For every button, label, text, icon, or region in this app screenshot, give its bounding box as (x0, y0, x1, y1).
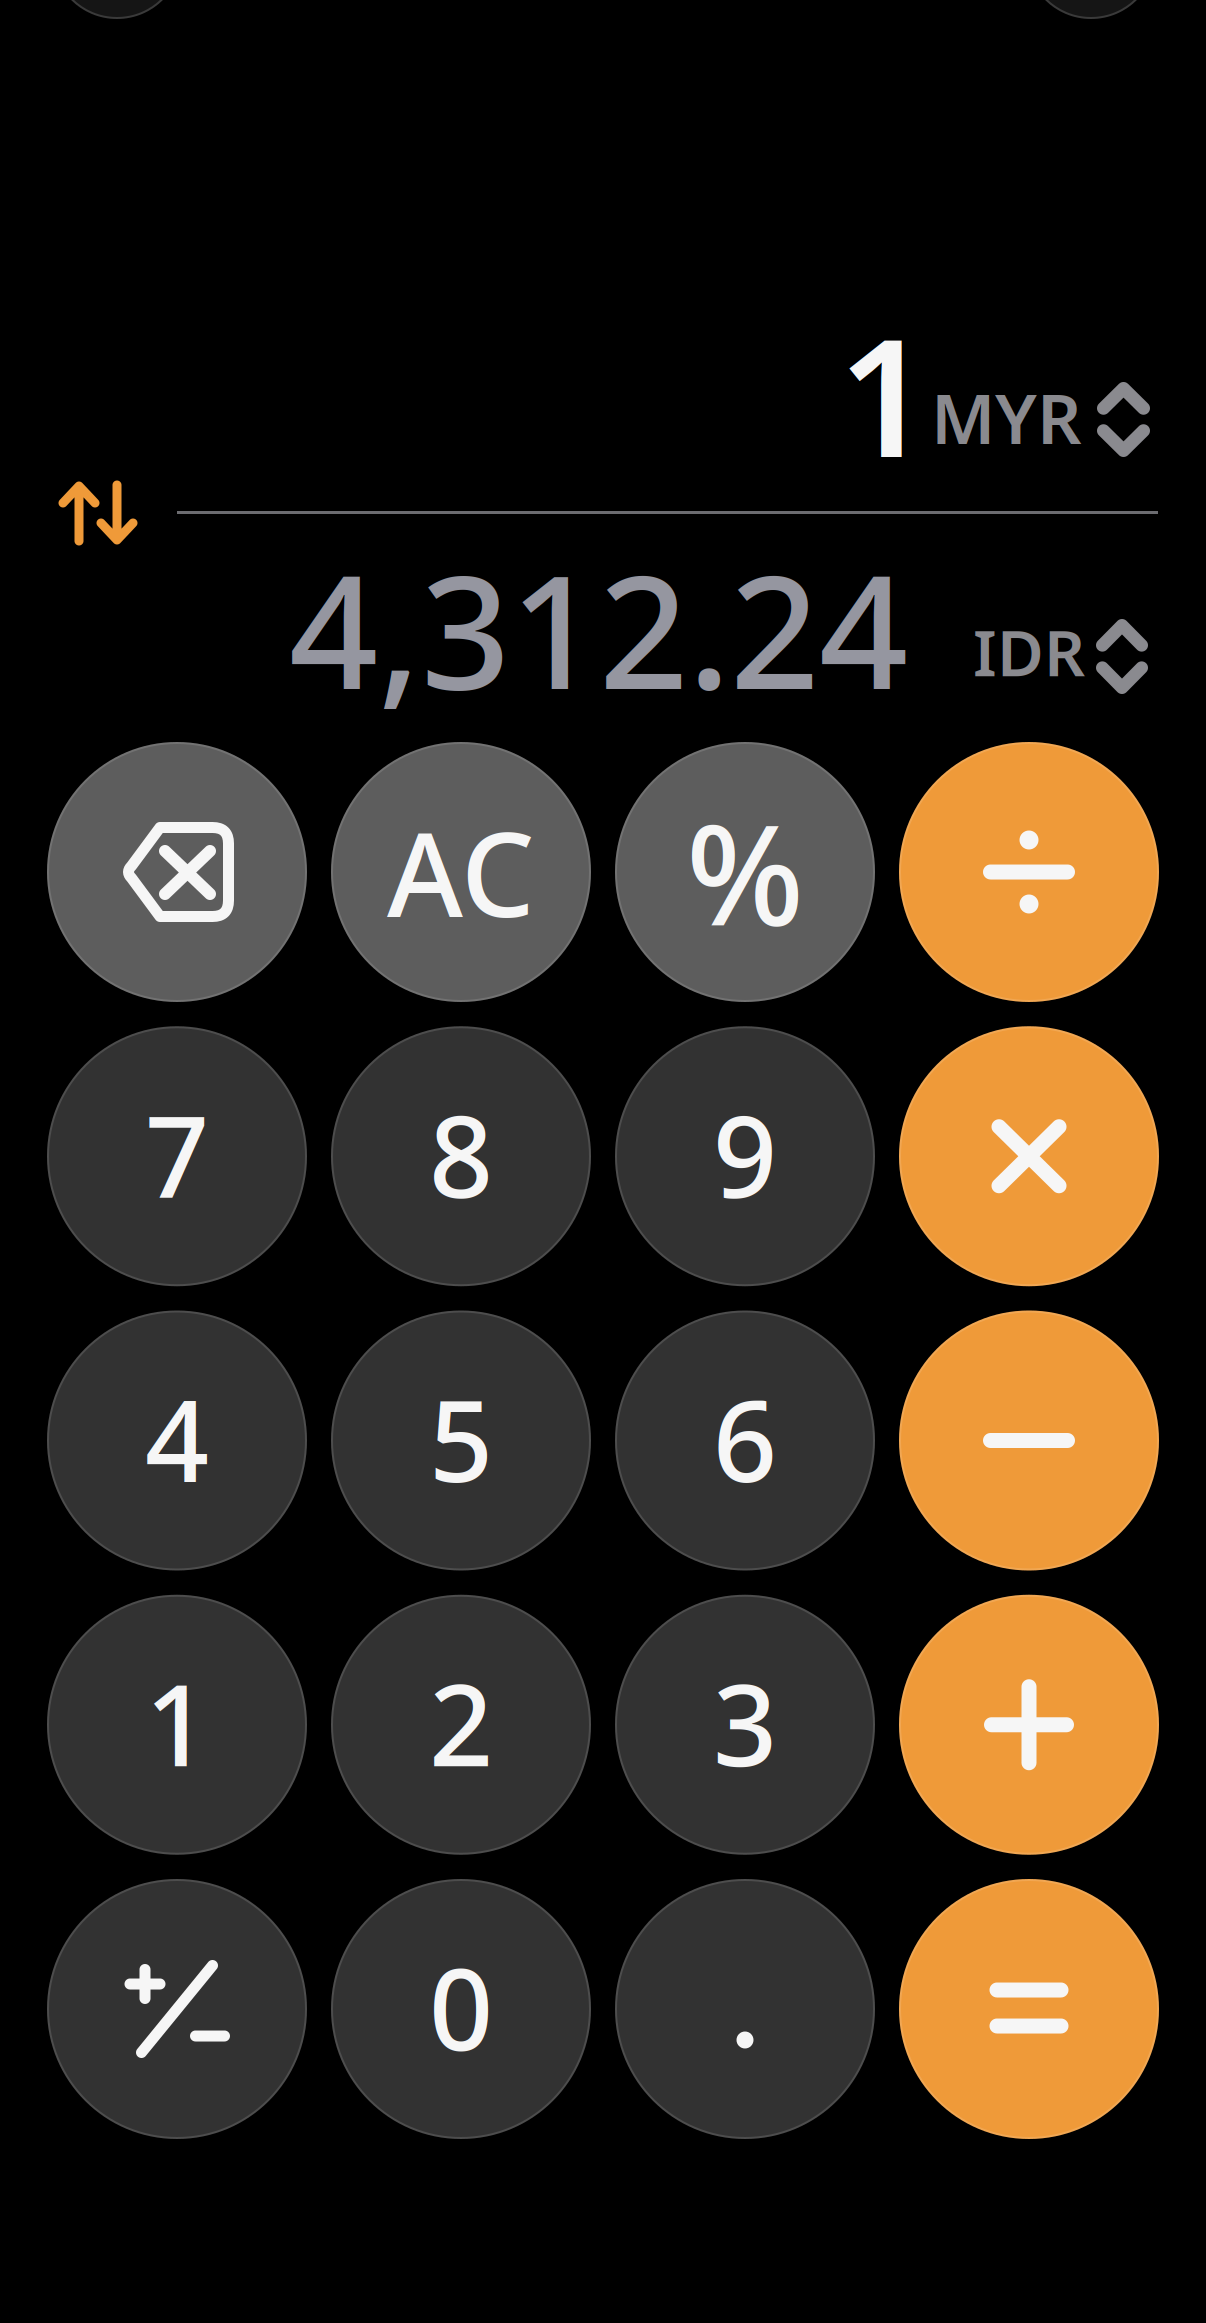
button[interactable]: Toggle sign (47, 1879, 307, 2139)
button[interactable]: Decimal point (615, 1879, 875, 2139)
button[interactable]: Swap currencies (32, 454, 164, 572)
button[interactable]: 8 (331, 1026, 591, 1286)
button[interactable]: Plus (899, 1595, 1159, 1855)
staticText: AC (387, 795, 535, 949)
button[interactable]: 0 (331, 1879, 591, 2139)
staticText: % (686, 780, 804, 964)
button[interactable]: All clear (331, 742, 591, 1002)
button[interactable]: 7 (47, 1026, 307, 1286)
staticText: 1 (145, 1648, 209, 1797)
button[interactable]: Minus (899, 1310, 1159, 1570)
button[interactable]: 6 (615, 1310, 875, 1570)
button[interactable]: 3 (615, 1595, 875, 1855)
button[interactable]: Multiply (899, 1026, 1159, 1286)
staticText: 9 (713, 1080, 777, 1229)
staticText: MYR (931, 371, 1082, 463)
staticText: 3 (713, 1648, 777, 1797)
staticText: 8 (429, 1080, 493, 1229)
button[interactable]: Equals (899, 1879, 1159, 2139)
button[interactable]: 1 (47, 1595, 307, 1855)
button[interactable]: 2 (331, 1595, 591, 1855)
button[interactable]: Divide (899, 742, 1159, 1002)
staticText: 2 (429, 1648, 493, 1797)
button[interactable]: 4 (47, 1310, 307, 1570)
staticText: 0 (429, 1933, 493, 2081)
button[interactable]: Delete (47, 742, 307, 1002)
button[interactable]: 1 MYR, change source currency (838, 286, 1174, 502)
staticText: 7 (145, 1080, 209, 1229)
button[interactable]: 5 (331, 1310, 591, 1570)
staticText: 6 (713, 1364, 777, 1513)
button[interactable]: IDR, change target currency (965, 593, 1155, 709)
staticText: 5 (429, 1364, 493, 1513)
button[interactable]: Percent (615, 742, 875, 1002)
staticText: 4 (145, 1364, 209, 1513)
staticText: 4,312.24 (289, 525, 908, 732)
staticText: IDR (973, 609, 1085, 694)
button[interactable]: 9 (615, 1026, 875, 1286)
staticText: 1 (838, 286, 931, 502)
